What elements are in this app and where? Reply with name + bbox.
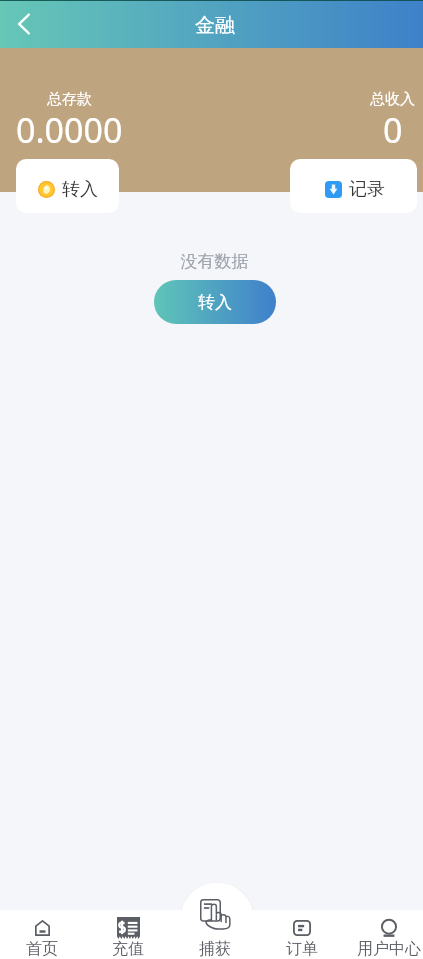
staticText: 总收入 — [370, 90, 415, 109]
button[interactable]: 用户中心 — [345, 910, 423, 959]
button[interactable]: 转入 — [154, 280, 276, 324]
staticText: 转入 — [198, 292, 232, 313]
staticText: 用户中心 — [357, 939, 421, 959]
button[interactable]: 充值 — [85, 910, 171, 959]
staticText: 订单 — [286, 939, 318, 959]
staticText: 转入 — [62, 178, 98, 201]
staticText: 金融 — [195, 13, 235, 38]
staticText: 0 — [383, 107, 403, 153]
staticText: 首页 — [26, 939, 58, 959]
staticText: 记录 — [349, 178, 385, 201]
staticText: 捕获 — [199, 939, 231, 959]
button[interactable]: 转入 — [16, 159, 119, 213]
button[interactable]: 记录 — [290, 159, 417, 213]
button[interactable]: Back — [0, 0, 48, 48]
staticText: 0.0000 — [16, 107, 123, 153]
button[interactable]: 首页 — [0, 910, 85, 959]
button[interactable]: 捕获 — [171, 883, 258, 932]
staticText: 充值 — [112, 939, 144, 959]
button[interactable]: 订单 — [258, 910, 345, 959]
staticText: 没有数据 — [3, 251, 423, 272]
staticText: 总存款 — [47, 90, 92, 109]
